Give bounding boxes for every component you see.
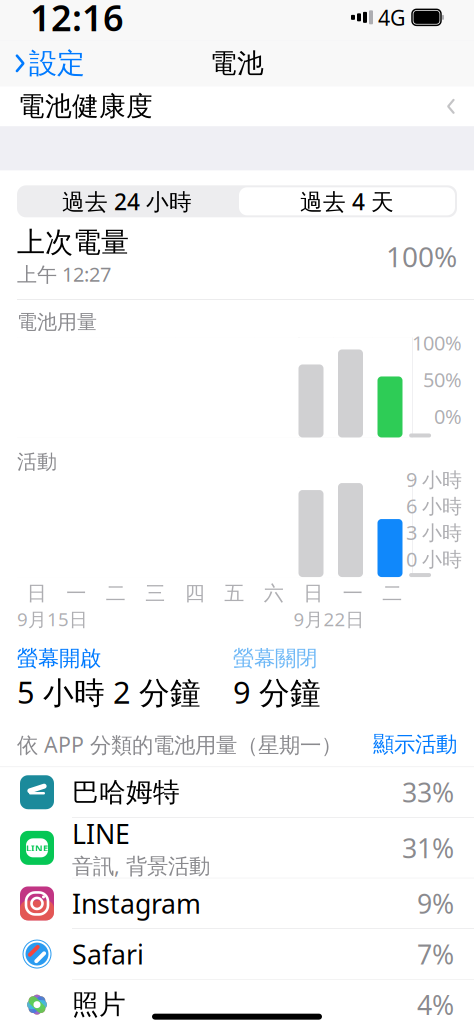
staticText: 二 — [382, 581, 402, 606]
staticText: 照片 — [72, 988, 126, 1021]
staticText: 活動 — [17, 449, 57, 474]
staticText: 過去 24 小時 — [62, 186, 192, 216]
staticText: Safari — [72, 936, 144, 972]
staticText: 100% — [412, 329, 462, 356]
button[interactable]: 過去 24 小時 — [17, 186, 237, 216]
staticText: 依 APP 分類的電池用量（星期一） — [17, 730, 342, 759]
staticText: 33% — [402, 774, 454, 810]
staticText: 5 小時 2 分鐘 — [17, 672, 201, 712]
staticText: 4G — [378, 3, 406, 31]
staticText: 上午 12:27 — [17, 261, 111, 287]
staticText: 顯示活動 — [373, 731, 457, 758]
staticText: 電池用量 — [17, 310, 97, 334]
staticText: 6 小時 — [406, 492, 462, 519]
button[interactable]: 照片 — [0, 980, 474, 1024]
staticText: 二 — [106, 581, 126, 606]
staticText: Instagram — [72, 886, 201, 921]
staticText: 一 — [343, 581, 363, 606]
button[interactable]: 過去 4 天 — [237, 185, 457, 217]
staticText: 電池健康度 — [18, 90, 153, 123]
button[interactable]: 設定 — [0, 40, 85, 87]
staticText: 過去 4 天 — [300, 186, 394, 216]
staticText: 100% — [386, 238, 457, 275]
button[interactable]: 巴哈姆特 — [0, 767, 474, 818]
staticText: 3 小時 — [406, 519, 462, 546]
staticText: 四 — [185, 581, 205, 606]
staticText: 日 — [303, 581, 323, 606]
button[interactable]: Safari — [0, 929, 474, 980]
staticText: 六 — [264, 581, 284, 606]
staticText: 螢幕開啟 — [17, 645, 101, 672]
staticText: 五 — [224, 581, 244, 606]
staticText: 9月15日 — [17, 607, 88, 631]
staticText: 三 — [145, 581, 165, 606]
staticText: 巴哈姆特 — [72, 776, 180, 809]
staticText: 日 — [27, 581, 47, 606]
staticText: LINE — [26, 842, 48, 854]
staticText: 7% — [417, 936, 454, 972]
staticText: 音訊, 背景活動 — [72, 851, 210, 880]
staticText: 31% — [402, 830, 454, 865]
staticText: 9 小時 — [406, 466, 462, 492]
staticText: 4% — [417, 987, 454, 1022]
staticText: 上次電量 — [17, 225, 129, 260]
button[interactable]: 顯示活動 — [373, 731, 457, 758]
staticText: 12:16 — [30, 0, 124, 41]
staticText: 9 分鐘 — [233, 672, 321, 712]
staticText: 9月22日 — [293, 607, 364, 631]
staticText: 螢幕關閉 — [233, 645, 317, 672]
button[interactable]: Instagram — [0, 878, 474, 929]
staticText: 一 — [66, 581, 86, 606]
button[interactable]: LINE — [0, 818, 474, 878]
staticText: LINE — [72, 816, 130, 851]
staticText: 50% — [423, 366, 462, 393]
staticText: 9% — [417, 886, 454, 921]
staticText: 設定 — [29, 46, 85, 81]
button[interactable]: 電池健康度 — [0, 86, 474, 126]
staticText: 0 小時 — [406, 546, 462, 572]
staticText: 電池 — [210, 47, 264, 80]
staticText: 0% — [434, 403, 462, 429]
